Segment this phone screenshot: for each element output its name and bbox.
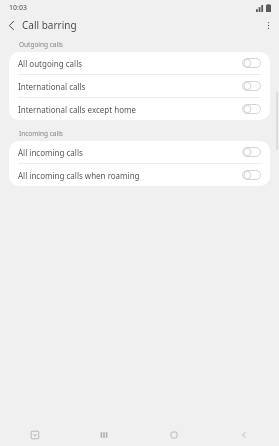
button[interactable]: All incoming calls: [9, 141, 270, 163]
staticText: International calls except home: [18, 104, 242, 115]
button[interactable]: Toggle: [242, 81, 261, 91]
button[interactable]: More options: [257, 15, 279, 35]
button[interactable]: Toggle: [242, 104, 261, 114]
button[interactable]: Back: [0, 15, 22, 35]
button[interactable]: Hide keyboard: [0, 423, 69, 446]
staticText: All outgoing calls: [18, 58, 242, 69]
button[interactable]: All incoming calls when roaming: [9, 164, 270, 186]
staticText: Outgoing calls: [19, 40, 63, 49]
button[interactable]: International calls except home: [9, 98, 270, 120]
button[interactable]: All outgoing calls: [9, 52, 270, 74]
staticText: Incoming calls: [19, 129, 63, 138]
button[interactable]: International calls: [9, 75, 270, 97]
button[interactable]: Toggle: [242, 170, 261, 180]
staticText: International calls: [18, 81, 242, 92]
staticText: All incoming calls when roaming: [18, 170, 242, 181]
button[interactable]: Recent apps: [69, 423, 139, 446]
button[interactable]: Toggle: [242, 147, 261, 157]
staticText: All incoming calls: [18, 147, 242, 158]
staticText: 10:03: [9, 3, 27, 13]
button[interactable]: Toggle: [242, 58, 261, 68]
button[interactable]: Home: [139, 423, 209, 446]
staticText: Call barring: [22, 18, 77, 32]
